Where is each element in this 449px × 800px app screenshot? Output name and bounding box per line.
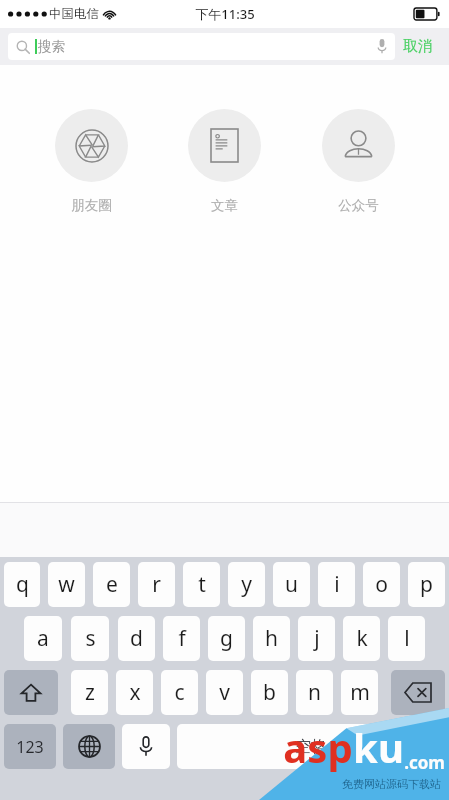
button[interactable]: v xyxy=(206,670,243,715)
staticText: l xyxy=(404,624,410,653)
button[interactable]: w xyxy=(48,562,85,607)
button[interactable]: h xyxy=(253,616,290,661)
button[interactable]: j xyxy=(298,616,335,661)
button[interactable]: r xyxy=(138,562,175,607)
staticText: h xyxy=(265,624,278,653)
staticText: 文章 xyxy=(211,197,238,214)
staticText: v xyxy=(219,678,230,707)
staticText: d xyxy=(130,624,143,653)
staticText: y xyxy=(241,570,252,599)
staticText: i xyxy=(334,570,340,599)
staticText: j xyxy=(314,624,320,653)
staticText: f xyxy=(178,624,186,653)
staticText: p xyxy=(420,570,433,599)
staticText: b xyxy=(263,678,276,707)
button[interactable]: y xyxy=(228,562,265,607)
button[interactable]: n xyxy=(296,670,333,715)
staticText: 中国电信 xyxy=(49,6,99,22)
button[interactable]: u xyxy=(273,562,310,607)
staticText: g xyxy=(220,624,233,653)
button[interactable]: 123 xyxy=(4,724,56,769)
button[interactable]: t xyxy=(183,562,220,607)
button[interactable]: s xyxy=(71,616,109,661)
staticText: r xyxy=(152,570,161,599)
staticText: q xyxy=(16,570,29,599)
button[interactable]: Switch keyboard xyxy=(63,724,115,769)
staticText: 空格 xyxy=(295,737,327,757)
staticText: n xyxy=(308,678,321,707)
staticText: a xyxy=(37,624,49,653)
button[interactable]: k xyxy=(343,616,380,661)
staticText: o xyxy=(375,570,388,599)
button[interactable]: m xyxy=(341,670,378,715)
staticText: c xyxy=(174,678,185,707)
button[interactable]: l xyxy=(388,616,425,661)
staticText: asp xyxy=(283,720,353,774)
button[interactable]: x xyxy=(116,670,153,715)
button[interactable]: g xyxy=(208,616,245,661)
staticText: w xyxy=(58,570,75,599)
staticText: 朋友圈 xyxy=(71,197,112,214)
staticText: s xyxy=(85,624,96,653)
other: Voice search xyxy=(377,39,387,54)
button[interactable]: d xyxy=(118,616,155,661)
staticText: .com xyxy=(404,751,445,774)
button[interactable]: o xyxy=(363,562,400,607)
button[interactable]: 文章 xyxy=(182,107,267,216)
staticText: k xyxy=(356,624,368,653)
button[interactable]: 取消 xyxy=(395,33,441,60)
button[interactable]: 公众号 xyxy=(316,107,401,216)
button[interactable]: Shift xyxy=(4,670,58,715)
button[interactable]: Backspace xyxy=(391,670,445,715)
button[interactable]: b xyxy=(251,670,288,715)
staticText: 下午11:35 xyxy=(195,5,255,23)
button[interactable]: f xyxy=(163,616,200,661)
button[interactable]: i xyxy=(318,562,355,607)
button[interactable]: 空格 xyxy=(177,724,445,769)
button[interactable]: c xyxy=(161,670,198,715)
button[interactable]: a xyxy=(24,616,62,661)
staticText: e xyxy=(106,570,118,599)
button[interactable]: 搜索 xyxy=(8,33,395,60)
button[interactable]: p xyxy=(408,562,445,607)
staticText: u xyxy=(285,570,298,599)
staticText: 取消 xyxy=(403,37,433,56)
staticText: 搜索 xyxy=(38,38,65,55)
button[interactable]: 朋友圈 xyxy=(49,107,134,216)
staticText: m xyxy=(350,678,370,707)
staticText: 公众号 xyxy=(338,197,379,214)
staticText: x xyxy=(129,678,141,707)
button[interactable]: e xyxy=(93,562,130,607)
staticText: 123 xyxy=(16,736,44,758)
button[interactable]: z xyxy=(71,670,108,715)
staticText: z xyxy=(85,678,95,707)
button[interactable]: q xyxy=(4,562,40,607)
staticText: 免费网站源码下载站 xyxy=(342,777,441,791)
staticText: ku xyxy=(353,720,404,774)
staticText: t xyxy=(198,570,206,599)
button[interactable]: Dictate xyxy=(122,724,170,769)
